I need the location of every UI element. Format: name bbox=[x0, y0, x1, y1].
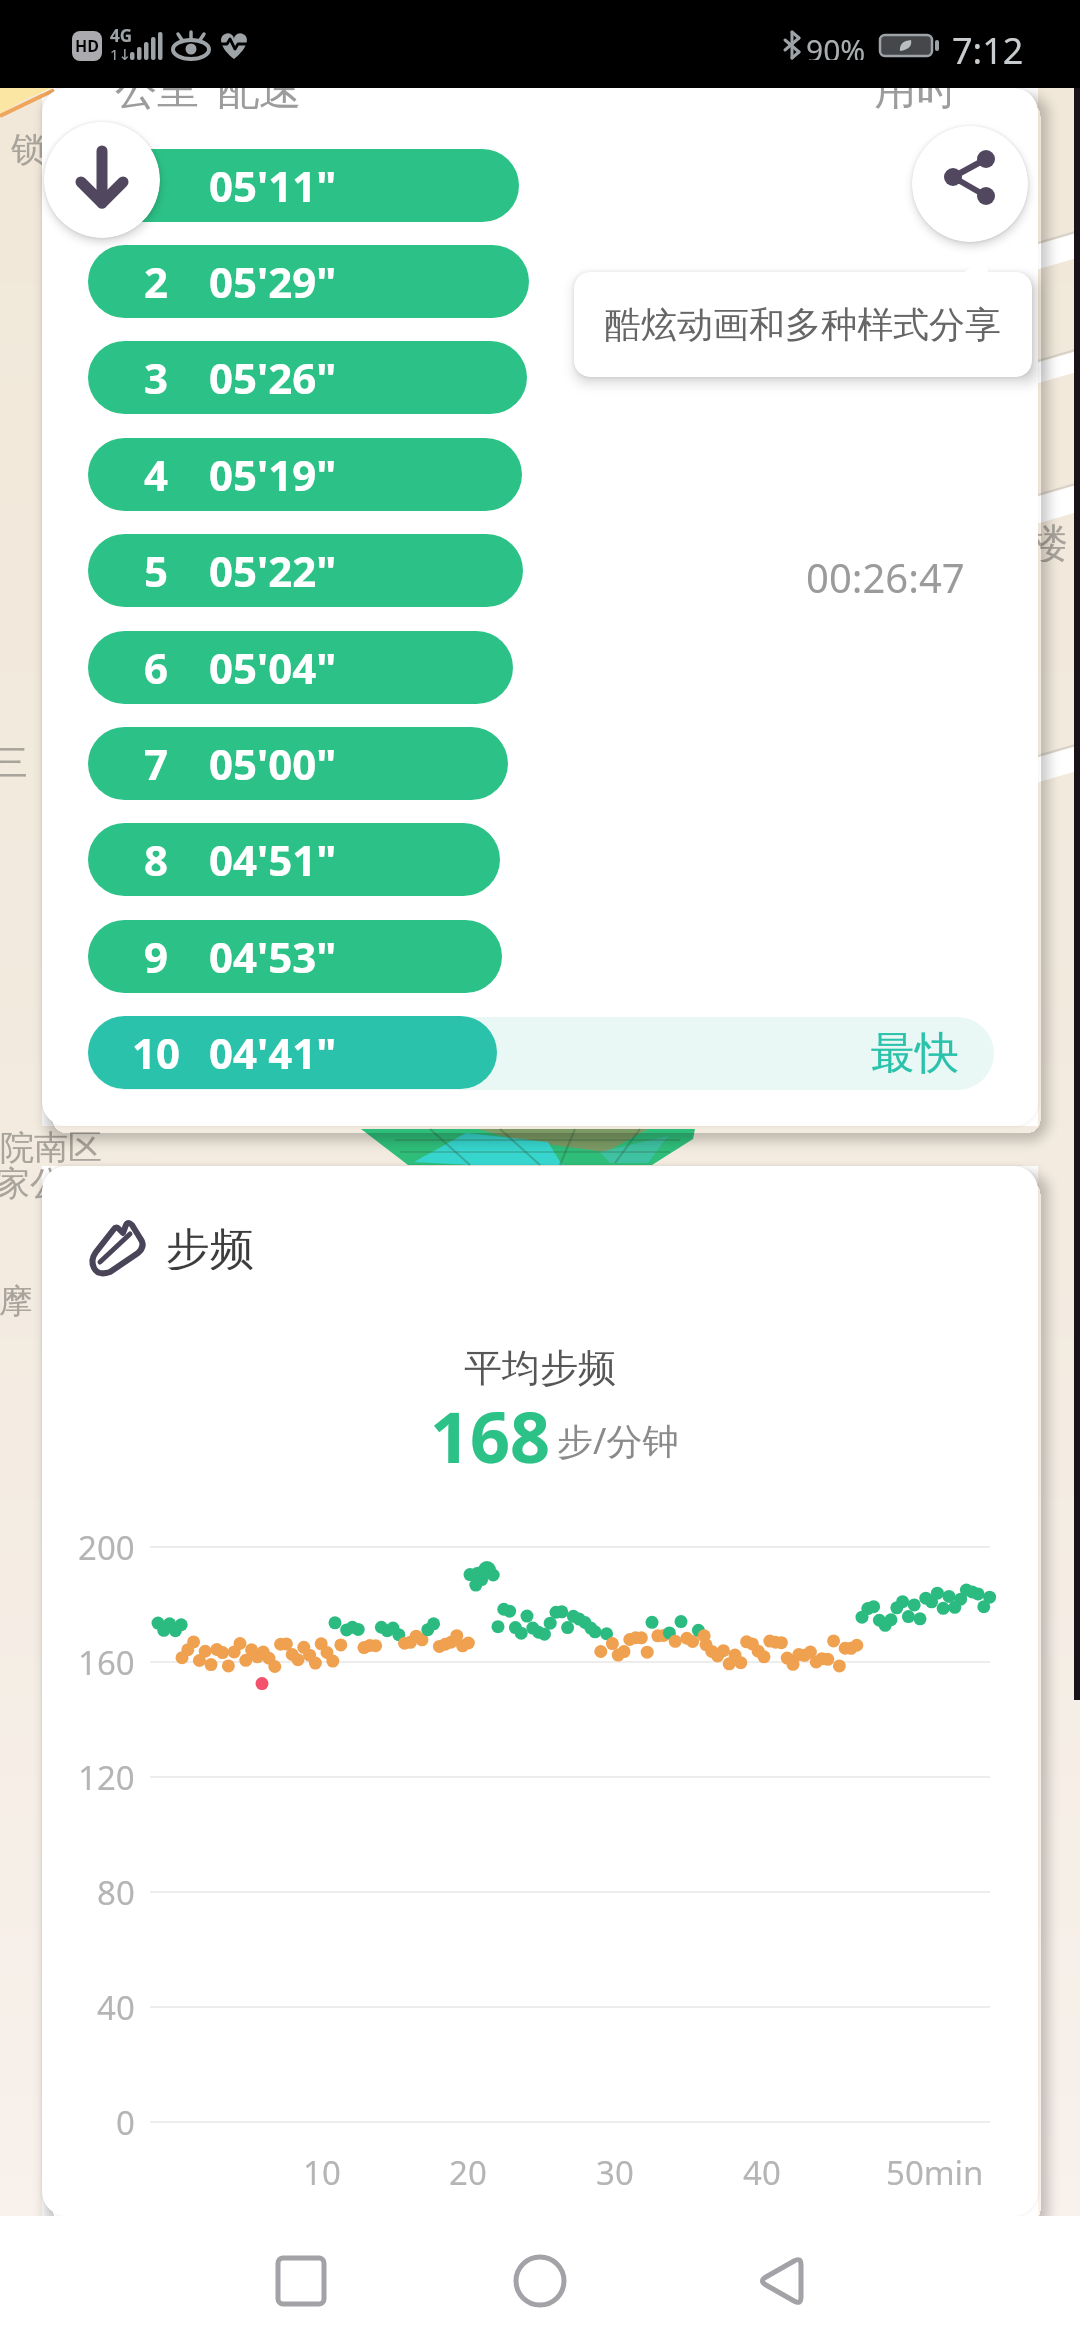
staticText: 00:26:47 bbox=[806, 550, 965, 596]
button[interactable] bbox=[88, 823, 500, 896]
staticText: 6 bbox=[144, 639, 169, 696]
staticText: 10 bbox=[303, 2150, 341, 2195]
staticText: 4G bbox=[110, 24, 133, 44]
staticText: 5 bbox=[144, 542, 169, 599]
button[interactable] bbox=[88, 149, 519, 222]
button[interactable]: 酷炫动画和多种样式分享 bbox=[574, 272, 1032, 377]
staticText: 配速 bbox=[217, 64, 301, 114]
staticText: 步频 bbox=[166, 1222, 254, 1270]
staticText: HD bbox=[75, 35, 99, 57]
staticText: 04'53" bbox=[209, 928, 337, 985]
staticText: 7:12 bbox=[952, 26, 1024, 64]
staticText: 9 bbox=[144, 928, 169, 985]
staticText: 160 bbox=[78, 1640, 135, 1685]
button[interactable] bbox=[44, 122, 160, 238]
staticText: 04'51" bbox=[209, 831, 337, 888]
staticText: 8 bbox=[144, 831, 169, 888]
staticText: 0 bbox=[116, 2100, 135, 2145]
staticText: 30 bbox=[596, 2150, 634, 2195]
button[interactable] bbox=[88, 438, 522, 511]
staticText: 50min bbox=[886, 2150, 984, 2195]
button[interactable] bbox=[88, 920, 502, 993]
staticText: 楼 bbox=[1028, 518, 1068, 562]
staticText: 05'26" bbox=[209, 349, 337, 406]
staticText: 90% bbox=[806, 30, 866, 60]
staticText: 40 bbox=[97, 1985, 135, 2030]
button[interactable] bbox=[912, 126, 1028, 242]
staticText: 2 bbox=[144, 253, 169, 310]
staticText: 3 bbox=[144, 349, 169, 406]
staticText: 1↓ bbox=[110, 44, 132, 62]
staticText: 步/分钟 bbox=[557, 1416, 679, 1460]
staticText: 168 bbox=[430, 1388, 551, 1464]
button[interactable] bbox=[88, 534, 523, 607]
staticText: 摩 bbox=[0, 1280, 33, 1320]
button[interactable] bbox=[88, 245, 529, 318]
staticText: 05'00" bbox=[209, 735, 337, 792]
button[interactable] bbox=[88, 631, 513, 704]
button[interactable] bbox=[88, 341, 527, 414]
button[interactable] bbox=[254, 2257, 348, 2340]
staticText: 120 bbox=[78, 1755, 135, 1800]
staticText: 用时 bbox=[874, 64, 958, 114]
button[interactable] bbox=[88, 1016, 497, 1089]
staticText: 05'04" bbox=[209, 639, 337, 696]
button[interactable] bbox=[88, 727, 508, 800]
button[interactable] bbox=[733, 2257, 827, 2340]
staticText: 公里 bbox=[115, 64, 199, 114]
staticText: 05'11" bbox=[209, 157, 337, 214]
staticText: 4 bbox=[144, 446, 169, 503]
staticText: 酷炫动画和多种样式分享 bbox=[605, 302, 1001, 347]
staticText: 7 bbox=[144, 735, 169, 792]
staticText: 05'22" bbox=[209, 542, 337, 599]
staticText: 家公 bbox=[0, 1162, 64, 1202]
staticText: 锁 bbox=[11, 128, 45, 168]
staticText: 05'29" bbox=[209, 253, 337, 310]
staticText: 80 bbox=[97, 1870, 135, 1915]
staticText: 05'19" bbox=[209, 446, 337, 503]
staticText: 最快 bbox=[871, 1026, 959, 1081]
staticText: 院南区 bbox=[0, 1126, 102, 1166]
staticText: 三世 bbox=[0, 740, 52, 780]
staticText: 20 bbox=[449, 2150, 487, 2195]
button[interactable] bbox=[493, 2257, 587, 2340]
staticText: 10 bbox=[132, 1024, 181, 1081]
staticText: 200 bbox=[78, 1525, 135, 1570]
staticText: 04'41" bbox=[209, 1024, 337, 1081]
staticText: 40 bbox=[743, 2150, 781, 2195]
staticText: 平均步频 bbox=[464, 1344, 616, 1390]
